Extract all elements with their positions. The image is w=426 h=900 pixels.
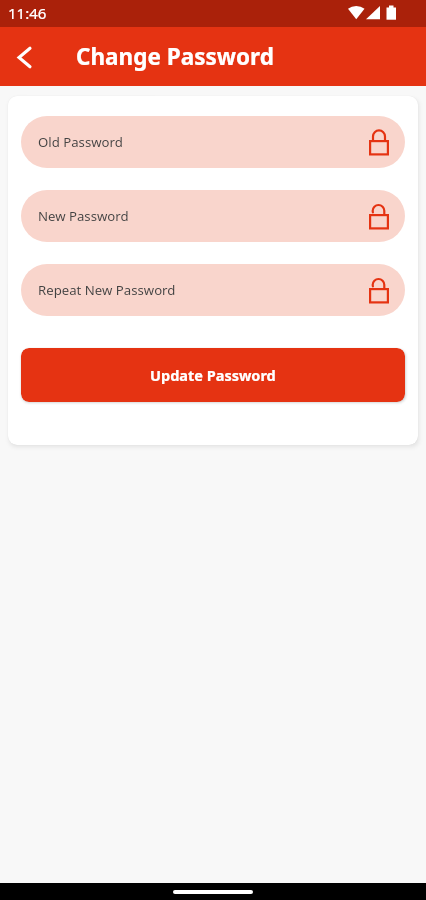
button[interactable]: Repeat New Password: [21, 264, 405, 316]
button[interactable]: Old Password: [21, 116, 405, 168]
button[interactable]: Back: [4, 38, 42, 76]
button[interactable]: New Password: [21, 190, 405, 242]
staticText: Repeat New Password: [38, 281, 176, 299]
other: Password visible: [368, 264, 390, 316]
staticText: Old Password: [38, 133, 123, 151]
staticText: Change Password: [76, 41, 274, 72]
other: Password visible: [368, 190, 390, 242]
other: Password hidden: [368, 116, 390, 168]
staticText: New Password: [38, 207, 129, 225]
staticText: Update Password: [150, 365, 276, 385]
button[interactable]: Update Password: [21, 348, 405, 402]
staticText: 11:46: [8, 3, 47, 23]
